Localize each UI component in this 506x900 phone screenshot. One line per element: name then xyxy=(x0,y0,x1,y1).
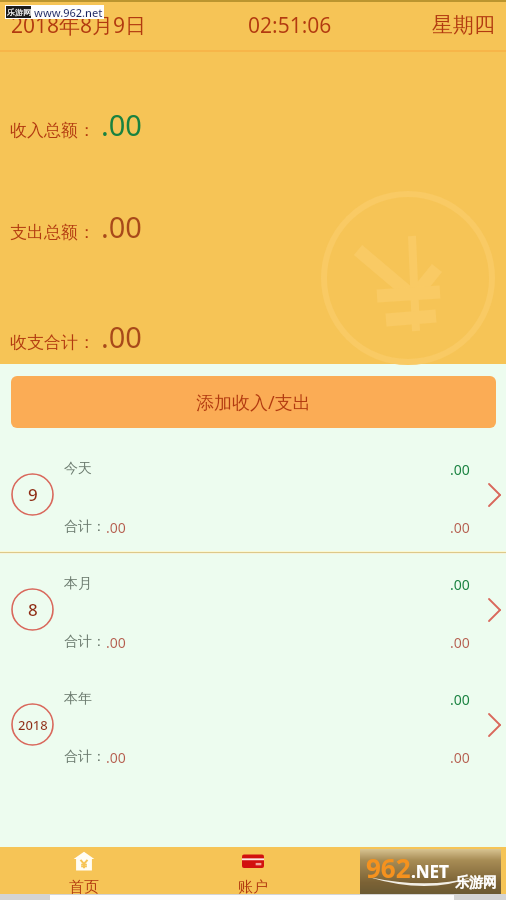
staticText: 添加收入/支出 xyxy=(196,390,311,415)
button[interactable]: 统计 xyxy=(337,847,506,900)
staticText: 乐游网 xyxy=(455,874,497,892)
staticText: .00 xyxy=(450,518,470,537)
staticText: 合计： xyxy=(64,748,106,766)
button[interactable]: 8 xyxy=(0,552,506,667)
staticText: .00 xyxy=(106,748,126,767)
staticText: .00 xyxy=(101,105,142,144)
staticText: 今天 xyxy=(64,460,92,478)
staticText: 收支合计： xyxy=(10,332,95,353)
staticText: .00 xyxy=(101,207,142,246)
staticText: 2018年8月9日 xyxy=(11,11,147,40)
staticText: 962 xyxy=(366,850,411,885)
staticText: .00 xyxy=(101,317,142,356)
staticText: .00 xyxy=(450,460,470,479)
staticText: 星期四 xyxy=(432,12,495,38)
staticText: .00 xyxy=(450,748,470,767)
staticText: 统计 xyxy=(407,878,437,897)
staticText: 9 xyxy=(28,483,38,506)
staticText: 02:51:06 xyxy=(248,11,332,40)
staticText: .00 xyxy=(450,633,470,652)
staticText: 乐游网 xyxy=(7,7,31,17)
staticText: 合计： xyxy=(64,518,106,536)
staticText: .00 xyxy=(106,518,126,537)
staticText: 首页 xyxy=(69,878,99,897)
staticText: .00 xyxy=(106,633,126,652)
staticText: 支出总额： xyxy=(10,222,95,243)
staticText: .NET xyxy=(411,860,449,883)
button[interactable]: 首页 xyxy=(0,847,168,900)
button[interactable]: 9 xyxy=(0,437,506,552)
staticText: 收入总额： xyxy=(10,120,95,141)
button[interactable]: 2018 xyxy=(0,667,506,782)
staticText: .00 xyxy=(450,690,470,709)
button[interactable]: 账户 xyxy=(168,847,337,900)
staticText: 本月 xyxy=(64,575,92,593)
staticText: 合计： xyxy=(64,633,106,651)
staticText: 账户 xyxy=(238,878,268,897)
button[interactable]: 添加收入/支出 xyxy=(11,376,496,428)
staticText: 2018 xyxy=(18,716,48,734)
staticText: www.962.net xyxy=(34,5,103,19)
staticText: 本年 xyxy=(64,690,92,708)
staticText: .00 xyxy=(450,575,470,594)
staticText: 8 xyxy=(28,598,38,621)
